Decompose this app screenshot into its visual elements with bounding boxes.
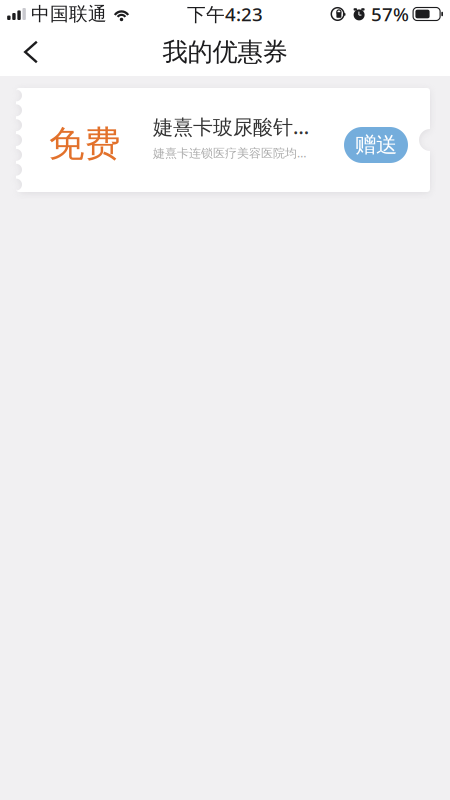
staticText: 婕熹卡玻尿酸针… — [153, 113, 309, 140]
staticText: 我的优惠券 — [162, 36, 287, 67]
staticText: 免费 — [48, 122, 120, 166]
button[interactable]: 赠送 — [344, 122, 408, 158]
staticText: 57% — [371, 2, 409, 26]
button[interactable]: 返回 — [0, 28, 54, 75]
staticText: 下午4:23 — [187, 2, 263, 26]
staticText: 婕熹卡连锁医疗美容医院均… — [153, 145, 306, 161]
staticText: 赠送 — [355, 132, 397, 158]
staticText: 中国联通 — [31, 2, 107, 25]
